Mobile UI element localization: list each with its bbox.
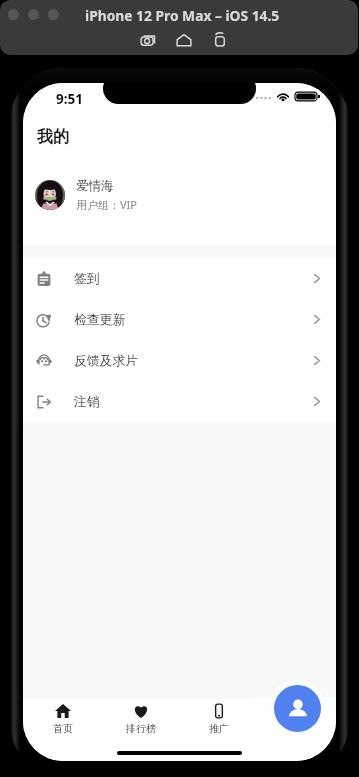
button[interactable]: Screenshot bbox=[139, 31, 157, 49]
staticText: 9:51 bbox=[56, 90, 83, 108]
button[interactable]: 爱情海 bbox=[23, 170, 336, 220]
button[interactable]: 首页 bbox=[23, 703, 102, 735]
staticText: iPhone 12 Pro Max – iOS 14.5 bbox=[85, 6, 280, 25]
staticText: 签到 bbox=[74, 271, 100, 287]
button[interactable]: 推广 bbox=[180, 703, 258, 735]
staticText: 爱情海 bbox=[76, 178, 114, 194]
staticText: 首页 bbox=[53, 722, 73, 735]
button[interactable]: 排行榜 bbox=[102, 703, 180, 735]
staticText: 检查更新 bbox=[74, 312, 126, 328]
staticText: 排行榜 bbox=[126, 722, 156, 735]
button[interactable]: Profile bbox=[274, 685, 321, 732]
button[interactable]: Home bbox=[175, 31, 193, 49]
button[interactable]: 注销 bbox=[23, 381, 336, 422]
staticText: 我的 bbox=[37, 127, 69, 147]
staticText: 注销 bbox=[74, 394, 100, 410]
staticText: 用户组：VIP bbox=[76, 197, 137, 212]
button[interactable]: 签到 bbox=[23, 258, 336, 299]
button[interactable]: Rotate bbox=[211, 31, 229, 49]
button[interactable]: 检查更新 bbox=[23, 299, 336, 340]
staticText: 推广 bbox=[209, 722, 229, 735]
staticText: 反馈及求片 bbox=[74, 353, 138, 369]
button[interactable]: 反馈及求片 bbox=[23, 340, 336, 381]
